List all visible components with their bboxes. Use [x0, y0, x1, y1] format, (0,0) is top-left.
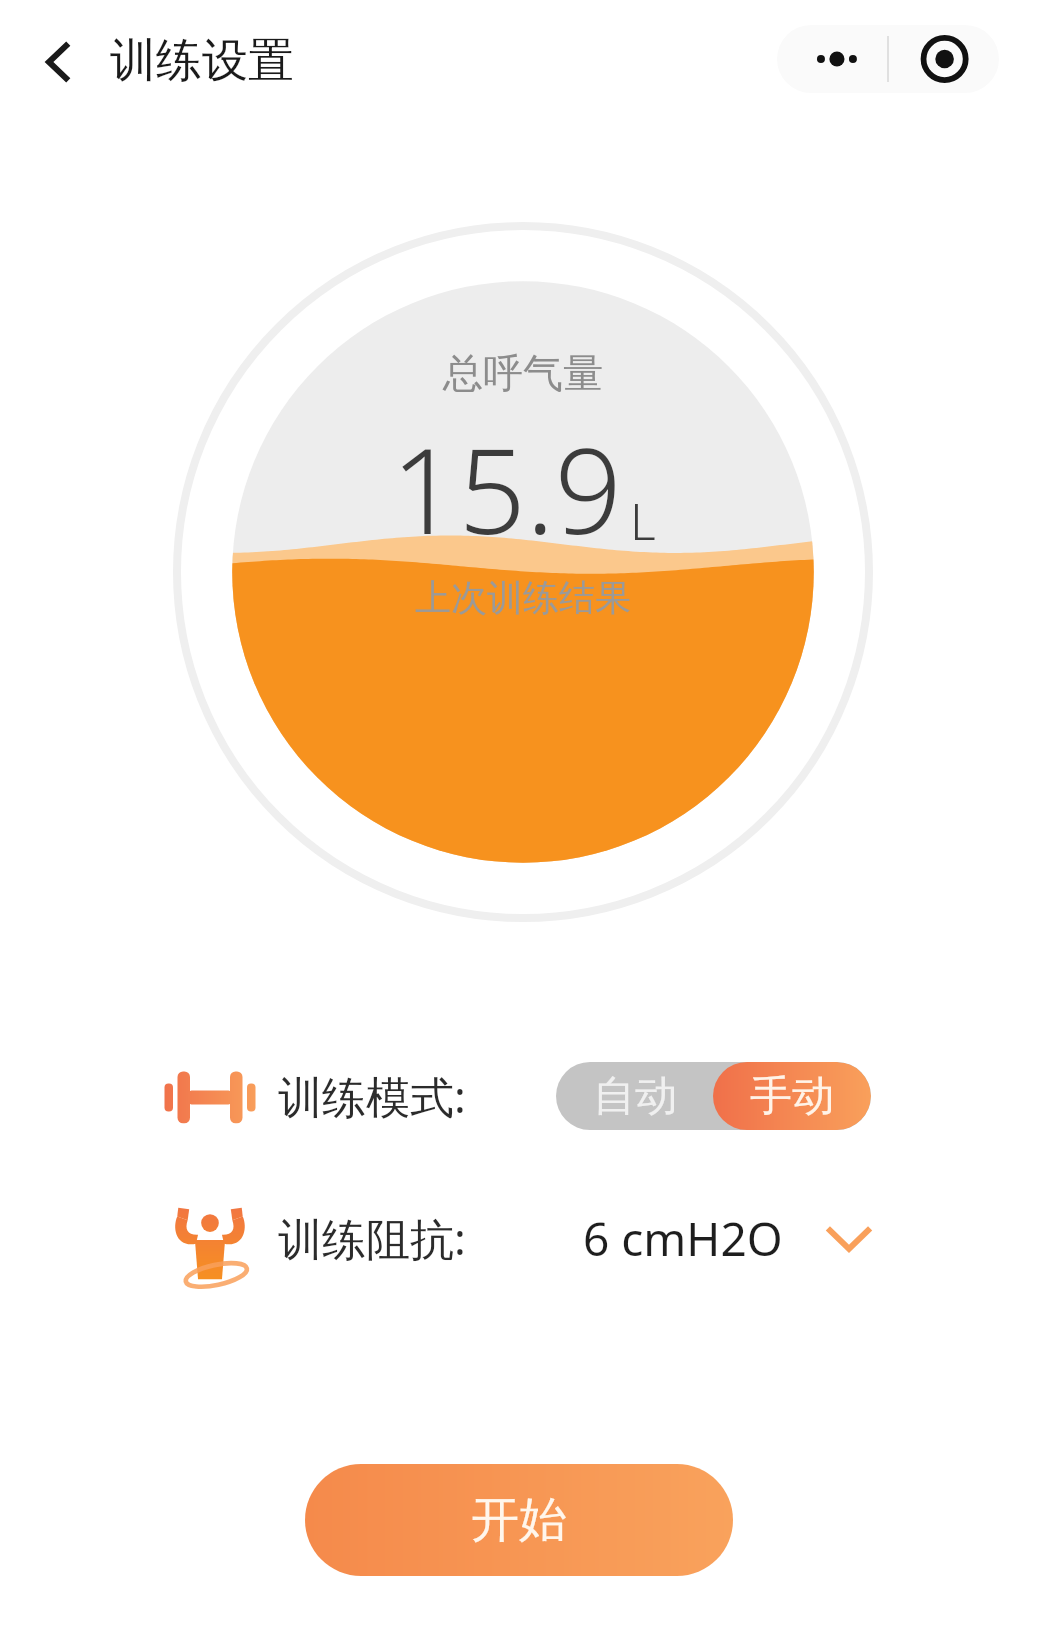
- staticText: 总呼气量: [443, 348, 603, 398]
- button[interactable]: 开始: [305, 1464, 733, 1576]
- staticText: 训练设置: [110, 32, 294, 90]
- button[interactable]: Select resistance: [818, 1207, 880, 1269]
- staticText: 6 cmH2O: [583, 1207, 783, 1270]
- staticText: 手动: [750, 1070, 834, 1123]
- staticText: 训练模式:: [278, 1066, 466, 1126]
- staticText: 上次训练结果: [415, 575, 631, 620]
- button[interactable]: Menu and Close: [777, 25, 999, 93]
- button[interactable]: 手动: [713, 1062, 871, 1130]
- staticText: 训练阻抗:: [278, 1208, 466, 1268]
- button[interactable]: 自动: [556, 1062, 713, 1130]
- button[interactable]: 训练阻抗:: [0, 1188, 1045, 1288]
- staticText: 15.9: [391, 408, 622, 569]
- staticText: L: [630, 487, 656, 555]
- staticText: 开始: [471, 1490, 567, 1550]
- staticText: 自动: [593, 1070, 677, 1123]
- button[interactable]: Back: [20, 22, 100, 102]
